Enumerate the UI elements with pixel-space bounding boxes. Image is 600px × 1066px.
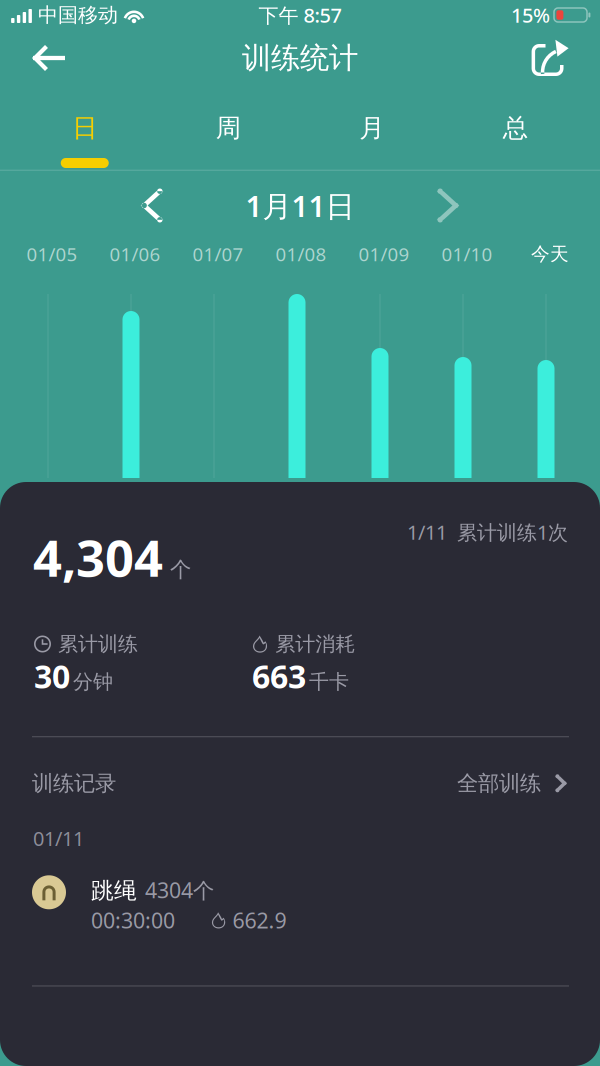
staticText: 千卡 xyxy=(309,669,349,694)
button[interactable]: 日 xyxy=(13,86,156,171)
button[interactable]: 下一天 xyxy=(426,183,470,227)
staticText: 中国移动 xyxy=(38,3,118,27)
staticText: 分钟 xyxy=(73,669,113,694)
staticText: 月 xyxy=(359,112,384,143)
staticText: 1月11日 xyxy=(245,186,354,225)
staticText: 01/10 xyxy=(441,242,492,266)
button[interactable]: 返回 xyxy=(0,30,102,86)
staticText: 30 xyxy=(34,655,70,697)
staticText: 662.9 xyxy=(232,906,286,934)
staticText: 全部训练 xyxy=(457,770,541,796)
staticText: 下午 8:57 xyxy=(258,2,341,28)
staticText: 01/09 xyxy=(358,242,409,266)
staticText: 今天 xyxy=(531,242,569,265)
staticText: 总 xyxy=(503,112,528,143)
staticText: 01/11 xyxy=(33,825,84,852)
staticText: 00:30:00 xyxy=(91,906,175,934)
staticText: 累计消耗 xyxy=(275,632,355,656)
staticText: 4,304 xyxy=(33,523,163,591)
button[interactable]: 跳绳 xyxy=(0,875,600,935)
staticText: 01/07 xyxy=(192,242,243,266)
staticText: 15% xyxy=(511,2,550,28)
staticText: 周 xyxy=(216,112,241,143)
staticText: 日 xyxy=(72,112,97,143)
staticText: 训练记录 xyxy=(32,770,116,796)
staticText: 1/11 累计训练1次 xyxy=(407,519,568,545)
button[interactable]: 总 xyxy=(443,86,587,171)
staticText: 累计训练 xyxy=(58,632,138,656)
button[interactable]: 训练记录 xyxy=(0,764,600,802)
staticText: 个 xyxy=(170,556,191,583)
button[interactable]: 上一天 xyxy=(130,183,174,227)
staticText: 01/06 xyxy=(109,242,160,266)
button[interactable]: 周 xyxy=(156,86,300,171)
staticText: 跳绳 xyxy=(91,877,137,905)
button[interactable]: 月 xyxy=(300,86,443,171)
staticText: 4304个 xyxy=(145,876,214,904)
staticText: 01/05 xyxy=(26,242,77,266)
staticText: 训练统计 xyxy=(242,40,358,76)
button[interactable]: 分享 xyxy=(498,30,600,86)
staticText: 01/08 xyxy=(275,242,326,266)
staticText: 663 xyxy=(252,655,306,697)
